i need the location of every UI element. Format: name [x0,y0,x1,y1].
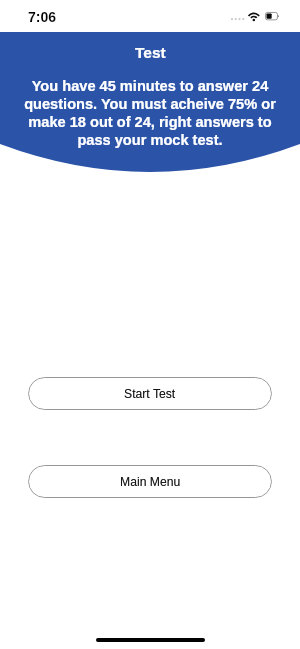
other: Signal, Wi-Fi and battery status [232,0,281,32]
staticText: Start Test [124,387,176,401]
staticText: You have 45 minutes to answer 24 questio… [22,78,278,149]
staticText: Start Test [124,387,176,401]
staticText: Test [135,44,166,61]
staticText: 7:06 [28,9,57,25]
button[interactable]: Main Menu [28,465,272,498]
staticText: Main Menu [120,475,181,489]
button[interactable]: Start Test [28,377,272,410]
staticText: Main Menu [120,475,181,489]
